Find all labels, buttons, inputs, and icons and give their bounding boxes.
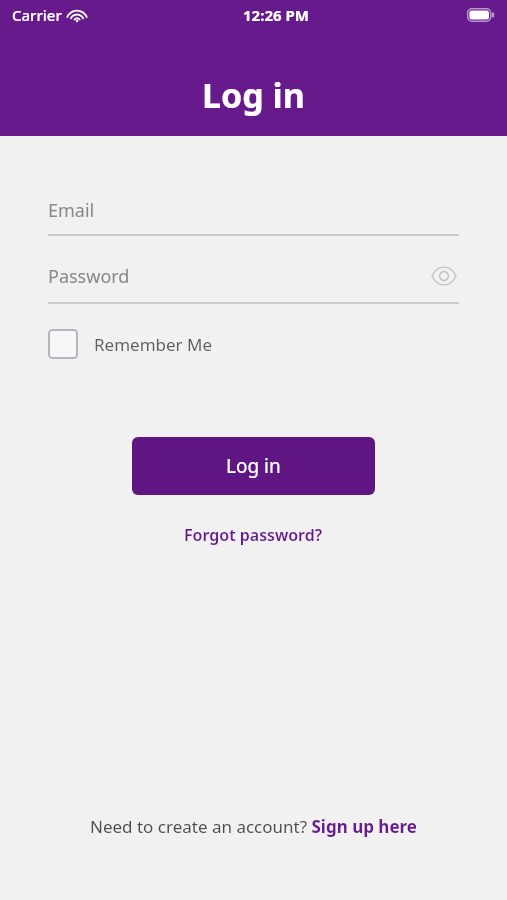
staticText: Password [48,264,130,289]
staticText: Forgot password? [184,524,323,546]
button[interactable]: Remember Me [48,329,213,359]
staticText: Log in [226,453,281,479]
staticText: Carrier [12,5,62,25]
staticText: 12:26 PM [243,5,309,25]
button[interactable]: Password [48,261,459,304]
button[interactable]: Email [48,198,459,236]
button[interactable]: Show password [429,261,459,291]
staticText: Log in [202,72,305,118]
staticText: Remember Me [94,333,213,356]
button[interactable]: Log in [132,437,375,495]
button[interactable]: Forgot password? [176,520,331,550]
staticText: Email [48,198,95,223]
staticText: Need to create an account? Sign up here [90,815,417,838]
button[interactable]: Need to create an account? Sign up here [84,811,423,842]
